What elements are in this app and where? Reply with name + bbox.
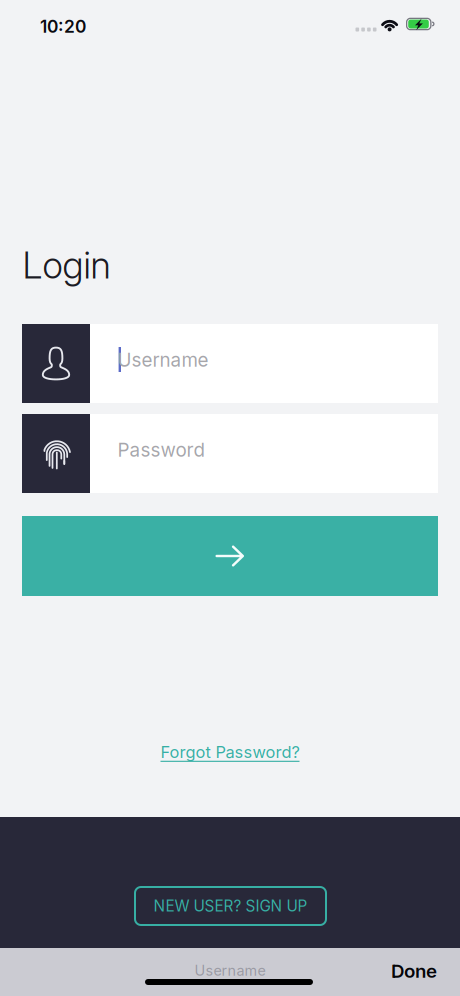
staticText: Username xyxy=(118,348,209,371)
button[interactable]: Sign in xyxy=(22,516,438,596)
staticText: Username xyxy=(194,962,265,979)
staticText: Password xyxy=(118,438,206,461)
button[interactable]: NEW USER? SIGN UP xyxy=(134,886,327,926)
button[interactable]: Done xyxy=(384,959,444,983)
staticText: 10:20 xyxy=(40,16,86,37)
staticText: NEW USER? SIGN UP xyxy=(153,897,307,915)
button[interactable]: Forgot Password? xyxy=(130,738,330,766)
staticText: Login xyxy=(22,243,110,287)
button[interactable]: Username xyxy=(22,324,438,403)
staticText: Done xyxy=(391,960,437,982)
staticText: Forgot Password? xyxy=(160,742,299,762)
button[interactable]: Password xyxy=(22,414,438,493)
